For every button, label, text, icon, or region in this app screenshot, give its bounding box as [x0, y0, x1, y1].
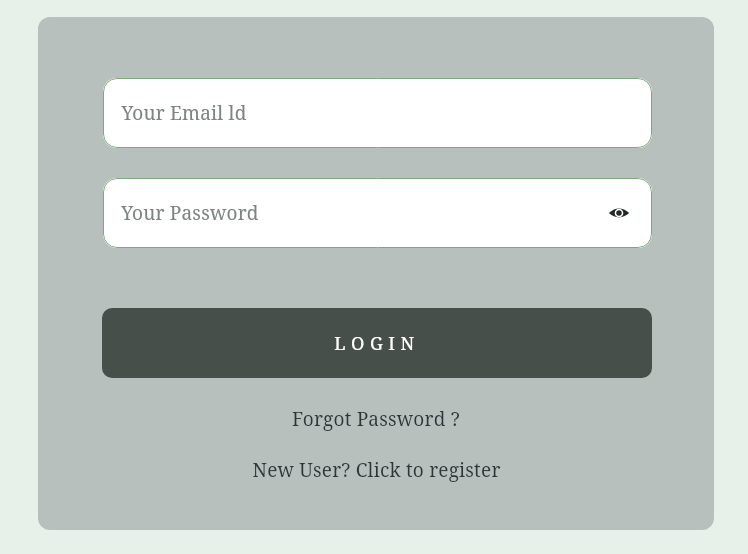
button[interactable]: Your Password: [103, 178, 652, 248]
staticText: Forgot Password ?: [292, 406, 460, 432]
button[interactable]: Show password: [602, 196, 636, 230]
staticText: LOGIN: [334, 331, 420, 356]
staticText: Your Email ld: [121, 100, 247, 126]
button[interactable]: New User? Click to register: [242, 453, 511, 487]
staticText: Your Password: [121, 200, 259, 226]
button[interactable]: LOGIN: [102, 308, 652, 378]
staticText: New User? Click to register: [252, 457, 501, 483]
button[interactable]: Your Email ld: [103, 78, 652, 148]
button[interactable]: Forgot Password ?: [282, 402, 470, 436]
